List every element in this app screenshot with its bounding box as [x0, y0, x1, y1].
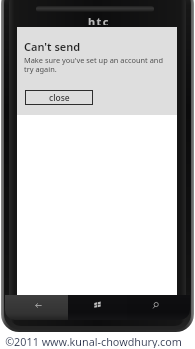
- button[interactable]: Back: [5, 295, 68, 320]
- staticText: Make sure you've set up an account and t…: [24, 55, 163, 74]
- button[interactable]: Search: [127, 295, 190, 320]
- staticText: Can't send: [24, 39, 81, 54]
- button[interactable]: Start: [68, 295, 127, 320]
- staticText: htc: [88, 14, 110, 25]
- button[interactable]: close: [25, 90, 93, 105]
- staticText: ©2011 www.kunal-chowdhury.com: [5, 334, 182, 348]
- staticText: close: [49, 92, 70, 104]
